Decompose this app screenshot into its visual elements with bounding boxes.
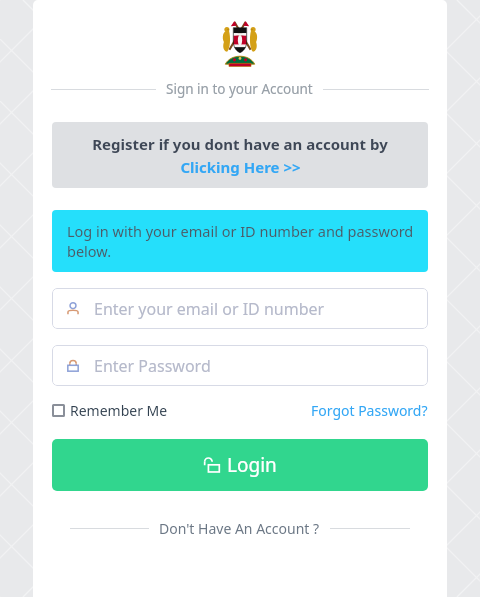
button[interactable]: Remember Me <box>52 401 168 420</box>
button[interactable]: Register if you dont have an account by <box>52 122 428 188</box>
staticText: Don't Have An Account ? <box>159 519 320 538</box>
staticText: Remember Me <box>70 401 168 420</box>
button[interactable]: Login <box>52 439 428 491</box>
staticText: Register if you dont have an account by <box>92 134 388 154</box>
staticText: Forgot Password? <box>311 401 428 420</box>
staticText: Enter Password <box>94 355 211 377</box>
other: Password <box>66 359 80 373</box>
other: User <box>66 302 80 316</box>
button[interactable]: Forgot Password? <box>311 401 428 420</box>
staticText: Enter your email or ID number <box>94 298 325 320</box>
staticText: Sign in to your Account <box>166 80 313 98</box>
button[interactable]: User <box>52 288 428 329</box>
staticText: Log in with your email or ID number and … <box>67 221 416 261</box>
staticText: Clicking Here >> <box>180 157 301 177</box>
button[interactable]: Password <box>52 345 428 386</box>
staticText: Login <box>227 452 277 478</box>
